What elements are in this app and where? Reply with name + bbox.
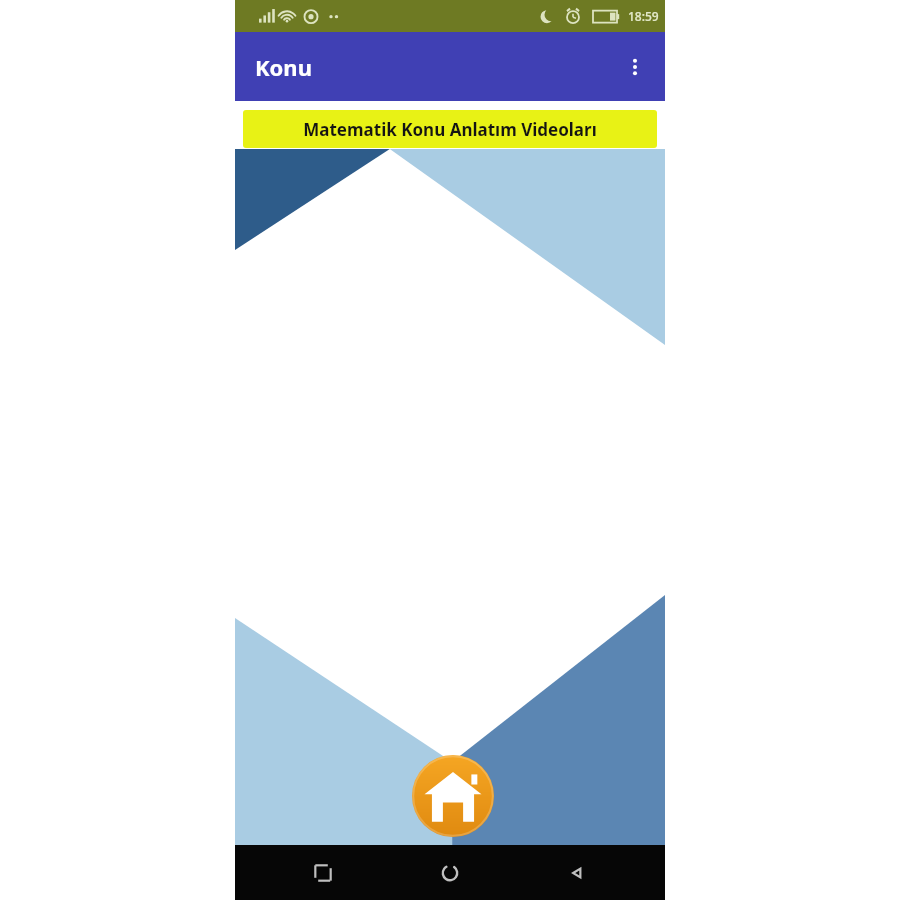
button[interactable]: Home (411, 754, 495, 838)
staticText: 18:59 (628, 8, 659, 24)
button[interactable]: Recent apps (301, 851, 345, 895)
button[interactable]: More options (617, 49, 653, 85)
button[interactable]: Matematik Konu Anlatım Videoları (243, 110, 657, 148)
staticText: Konu (255, 52, 312, 82)
staticText: Matematik Konu Anlatım Videoları (303, 118, 597, 141)
button[interactable]: Home (428, 851, 472, 895)
button[interactable]: Back (555, 851, 599, 895)
